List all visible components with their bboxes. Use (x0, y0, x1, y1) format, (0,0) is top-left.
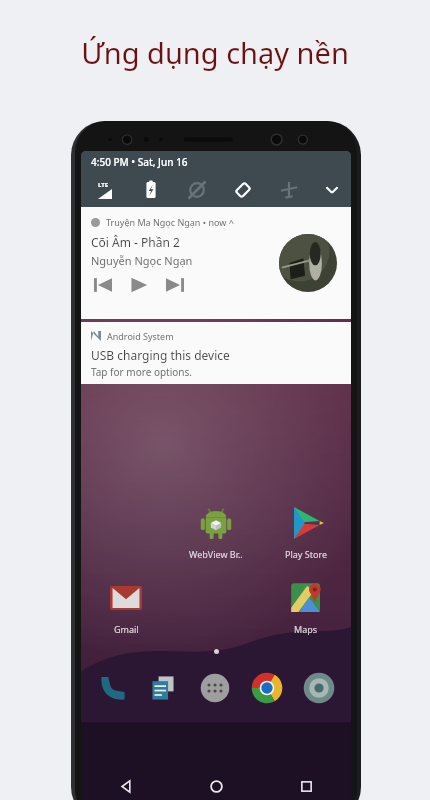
staticText: WebView Br.. (189, 548, 243, 560)
button[interactable]: Chrome (241, 666, 293, 710)
staticText: Truyện Ma Ngọc Ngạn • now ^ (106, 216, 234, 228)
button[interactable]: Next (163, 273, 187, 297)
staticText: Android System (107, 330, 174, 342)
button[interactable]: Truyện Ma Ngọc Ngạn • now ^ (81, 207, 351, 319)
staticText: 4:50 PM • Sat, Jun 16 (91, 155, 188, 169)
button[interactable]: Auto rotate (220, 173, 266, 207)
button[interactable]: Expand (312, 173, 351, 207)
button[interactable]: Camera (293, 666, 345, 710)
button[interactable]: Phone (87, 666, 138, 710)
staticText: LTE (98, 181, 109, 189)
button[interactable]: WebView Br.. (171, 501, 261, 562)
button[interactable]: Airplane mode (266, 173, 312, 207)
button[interactable]: Play (127, 273, 151, 297)
button[interactable]: Back (81, 767, 171, 800)
button[interactable]: Android System (81, 322, 351, 384)
staticText: Maps (294, 623, 318, 635)
button[interactable]: Play Store (261, 501, 351, 562)
button[interactable]: Messages (138, 666, 189, 710)
staticText: Tap for more options. (91, 365, 192, 379)
button[interactable]: Do not disturb (174, 173, 220, 207)
button[interactable]: All apps (189, 666, 241, 710)
staticText: Play Store (285, 548, 327, 560)
staticText: Cõi Âm - Phần 2 (91, 234, 180, 250)
button[interactable]: Previous (91, 273, 115, 297)
button[interactable]: Recents (261, 767, 351, 800)
button[interactable]: Gmail (81, 576, 171, 637)
staticText: Ứng dụng chạy nền (81, 33, 349, 72)
staticText: Gmail (114, 623, 139, 635)
button[interactable]: Home (171, 767, 261, 800)
button[interactable]: Maps (261, 576, 351, 637)
button[interactable]: Battery (128, 173, 174, 207)
staticText: Nguyễn Ngọc Ngạn (91, 253, 193, 268)
staticText: USB charging this device (91, 347, 230, 363)
button[interactable]: Mobile data (81, 173, 128, 207)
